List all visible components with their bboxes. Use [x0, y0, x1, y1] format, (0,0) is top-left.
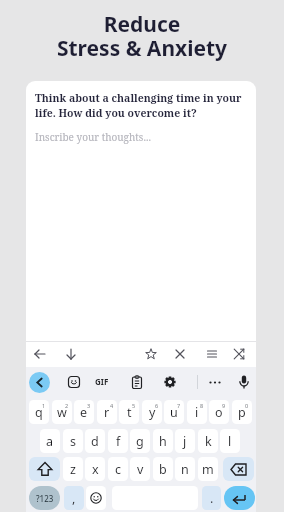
button[interactable]: k — [198, 429, 218, 453]
button[interactable]: v — [130, 457, 150, 481]
button[interactable]: , — [64, 486, 84, 510]
staticText: b — [159, 461, 167, 478]
button[interactable]: b — [153, 457, 173, 481]
button[interactable] — [223, 457, 254, 481]
staticText: v — [137, 461, 144, 478]
staticText: o — [215, 404, 223, 421]
button[interactable]: q — [29, 400, 49, 424]
staticText: z — [70, 461, 76, 478]
button[interactable]: y — [142, 400, 162, 424]
button[interactable]: w — [52, 400, 72, 424]
button[interactable]: . — [202, 486, 221, 510]
button[interactable]: r — [97, 400, 117, 424]
staticText: g — [136, 433, 144, 450]
staticText: 9 — [222, 402, 226, 409]
staticText: d — [91, 433, 99, 450]
staticText: n — [181, 461, 189, 478]
button[interactable]: d — [85, 429, 105, 453]
button[interactable] — [34, 348, 46, 360]
button[interactable] — [208, 375, 222, 389]
staticText: q — [35, 404, 43, 421]
button[interactable] — [145, 348, 157, 360]
staticText: Reduce — [0, 10, 284, 39]
button[interactable]: z — [63, 457, 83, 481]
staticText: m — [202, 461, 214, 478]
staticText: 3 — [87, 402, 91, 409]
button[interactable]: a — [40, 429, 60, 453]
button[interactable]: i — [187, 400, 207, 424]
button[interactable] — [237, 375, 251, 389]
staticText: 1 — [42, 402, 46, 409]
button[interactable]: o — [209, 400, 229, 424]
staticText: u — [170, 404, 178, 421]
button[interactable]: u — [164, 400, 184, 424]
staticText: 7 — [177, 402, 181, 409]
staticText: h — [159, 433, 167, 450]
button[interactable] — [86, 486, 106, 510]
staticText: . — [210, 490, 214, 507]
staticText: GIF — [95, 376, 109, 387]
button[interactable]: Think about a challenging time in your l… — [35, 91, 253, 120]
button[interactable] — [233, 348, 245, 360]
staticText: y — [149, 404, 156, 421]
button[interactable]: t — [119, 400, 139, 424]
button[interactable] — [174, 348, 186, 360]
button[interactable]: f — [108, 429, 128, 453]
button[interactable] — [67, 375, 81, 389]
staticText: a — [46, 433, 54, 450]
button[interactable]: j — [175, 429, 195, 453]
staticText: 4 — [110, 402, 114, 409]
button[interactable]: p — [232, 400, 252, 424]
staticText: ?123 — [36, 493, 54, 504]
button[interactable]: s — [63, 429, 83, 453]
staticText: 8 — [200, 402, 204, 409]
button[interactable]: l — [220, 429, 240, 453]
staticText: x — [92, 461, 99, 478]
button[interactable]: e — [74, 400, 94, 424]
button[interactable] — [29, 372, 50, 393]
staticText: s — [70, 433, 76, 450]
button[interactable] — [65, 348, 77, 360]
staticText: j — [183, 433, 187, 450]
staticText: r — [104, 404, 110, 421]
staticText: 0 — [245, 402, 249, 409]
staticText: 5 — [132, 402, 136, 409]
button[interactable] — [130, 375, 144, 389]
staticText: e — [80, 404, 88, 421]
staticText: t — [127, 404, 132, 421]
staticText: 6 — [155, 402, 159, 409]
button[interactable] — [163, 375, 177, 389]
button[interactable] — [29, 457, 60, 481]
button[interactable]: g — [130, 429, 150, 453]
staticText: p — [238, 404, 246, 421]
staticText: w — [57, 404, 67, 421]
button[interactable]: n — [175, 457, 195, 481]
staticText: f — [116, 433, 121, 450]
staticText: , — [72, 490, 76, 507]
button[interactable] — [224, 486, 255, 510]
staticText: Stress & Anxiety — [0, 34, 284, 63]
button[interactable] — [206, 348, 218, 360]
staticText: c — [115, 461, 122, 478]
button[interactable]: c — [108, 457, 128, 481]
staticText: 2 — [65, 402, 69, 409]
button[interactable]: h — [153, 429, 173, 453]
staticText: l — [228, 433, 232, 450]
staticText: i — [195, 404, 199, 421]
button[interactable]: ?123 — [29, 486, 60, 510]
button[interactable]: Inscribe your thoughts... — [35, 130, 151, 144]
button[interactable]: x — [85, 457, 105, 481]
button[interactable]: GIF — [95, 376, 109, 387]
button[interactable]: m — [198, 457, 218, 481]
staticText: k — [205, 433, 212, 450]
